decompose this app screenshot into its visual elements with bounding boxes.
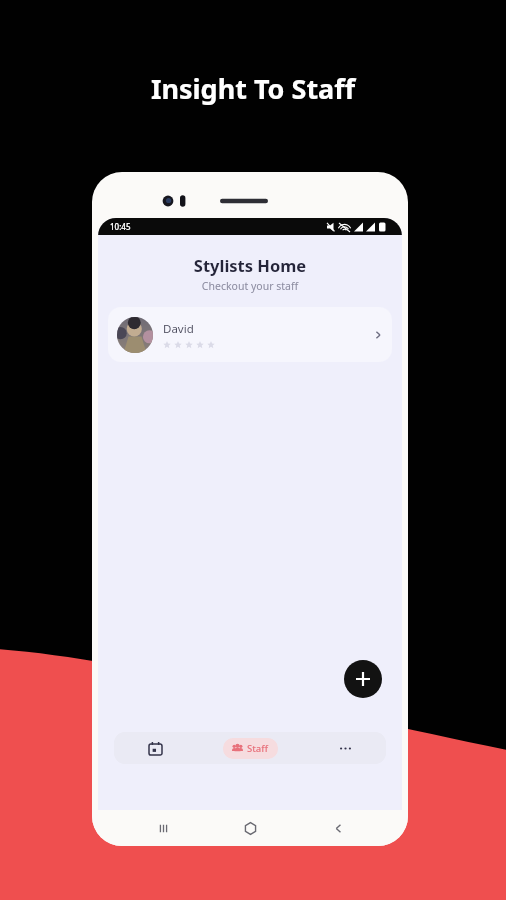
button[interactable]: More options — [331, 734, 359, 762]
button[interactable]: Calendar — [141, 734, 169, 762]
button[interactable]: Staff — [232, 742, 269, 755]
button[interactable]: Home — [233, 811, 267, 845]
button[interactable]: Back — [321, 811, 355, 845]
button[interactable]: Add stylist — [344, 660, 382, 698]
staticText: Stylists Home — [98, 254, 402, 276]
staticText: David — [163, 321, 194, 337]
button[interactable]: David — [108, 307, 392, 362]
staticText: Insight To Staff — [0, 70, 506, 107]
button[interactable]: Recents — [146, 811, 180, 845]
staticText: Checkout your staff — [98, 279, 402, 293]
staticText: Staff — [247, 742, 269, 755]
staticText: 10:45 — [110, 221, 131, 232]
